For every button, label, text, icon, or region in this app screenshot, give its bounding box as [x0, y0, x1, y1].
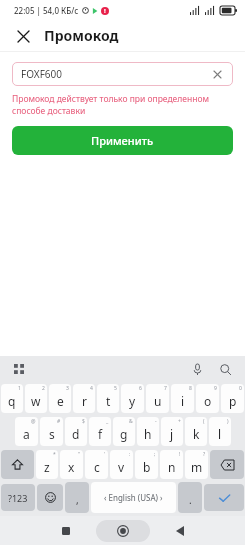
staticText: $: [82, 418, 85, 425]
staticText: b: [143, 459, 151, 475]
button[interactable]: ,: [65, 482, 89, 513]
button[interactable]: Recents: [46, 516, 86, 545]
button[interactable]: .: [178, 482, 202, 513]
staticText: h: [144, 426, 152, 442]
staticText: 1: [18, 385, 21, 392]
button[interactable]: Backspace: [210, 450, 244, 479]
button[interactable]: 9: [196, 384, 219, 413]
staticText: t: [106, 393, 111, 409]
button[interactable]: 0: [221, 384, 244, 413]
staticText: +: [178, 418, 181, 425]
staticText: y: [129, 393, 136, 409]
staticText: ?123: [8, 492, 28, 504]
staticText: #: [57, 418, 61, 425]
button[interactable]: :: [110, 450, 133, 479]
staticText: 2: [42, 385, 45, 392]
button[interactable]: Close: [12, 25, 34, 47]
button[interactable]: 4: [73, 384, 95, 413]
button[interactable]: $: [65, 417, 87, 446]
button[interactable]: Enter: [204, 484, 244, 511]
button[interactable]: Home: [96, 520, 150, 542]
staticText: ,: [76, 493, 79, 507]
staticText: d: [72, 426, 80, 442]
button[interactable]: +: [161, 417, 183, 446]
button[interactable]: !: [160, 450, 183, 479]
staticText: FOXF600: [21, 67, 63, 81]
button[interactable]: Symbols: [1, 484, 35, 511]
button[interactable]: *: [36, 450, 58, 479]
staticText: k: [193, 426, 200, 442]
staticText: &: [129, 418, 133, 425]
staticText: n: [168, 459, 176, 475]
button[interactable]: (: [185, 417, 207, 446]
staticText: 4: [90, 385, 93, 392]
button[interactable]: Clear: [210, 67, 224, 81]
staticText: x: [68, 459, 75, 475]
button[interactable]: ‹ English (USA) ›: [91, 482, 176, 513]
staticText: z: [44, 459, 50, 475]
button[interactable]: FOXF600: [12, 62, 233, 86]
button[interactable]: ): [209, 417, 231, 446]
staticText: u: [154, 393, 162, 409]
staticText: *: [53, 451, 56, 458]
staticText: m: [191, 459, 203, 475]
staticText: .: [189, 493, 192, 507]
button[interactable]: @: [15, 417, 38, 446]
staticText: Применить: [91, 133, 154, 148]
button[interactable]: 5: [97, 384, 119, 413]
button[interactable]: Применить: [12, 126, 233, 155]
button[interactable]: Voice input: [187, 359, 207, 379]
staticText: w: [31, 393, 41, 409]
staticText: @: [31, 418, 36, 425]
staticText: ): [227, 418, 229, 425]
staticText: q: [8, 393, 16, 409]
staticText: a: [23, 426, 30, 442]
staticText: ;: [154, 451, 156, 458]
button[interactable]: Search: [215, 359, 235, 379]
staticText: !: [104, 7, 106, 15]
staticText: Промокод действует только при определенн…: [12, 93, 233, 117]
staticText: f: [98, 426, 103, 442]
staticText: r: [82, 393, 87, 409]
staticText: 3: [66, 385, 69, 392]
button[interactable]: -: [137, 417, 159, 446]
button[interactable]: 1: [1, 384, 23, 413]
button[interactable]: Shift: [1, 450, 34, 479]
staticText: i: [181, 393, 185, 409]
button[interactable]: 3: [49, 384, 71, 413]
staticText: _: [106, 418, 109, 425]
button[interactable]: ?: [185, 450, 208, 479]
button[interactable]: 7: [146, 384, 169, 413]
button[interactable]: _: [89, 417, 111, 446]
button[interactable]: &: [113, 417, 135, 446]
staticText: :: [129, 451, 131, 458]
staticText: ": [78, 451, 81, 458]
staticText: c: [94, 459, 100, 475]
staticText: j: [170, 426, 174, 442]
staticText: -: [155, 418, 157, 425]
staticText: p: [229, 393, 237, 409]
button[interactable]: 2: [25, 384, 47, 413]
button[interactable]: #: [40, 417, 63, 446]
staticText: ?: [203, 451, 206, 458]
button[interactable]: ': [85, 450, 108, 479]
button[interactable]: Back: [160, 516, 200, 545]
staticText: v: [118, 459, 125, 475]
button[interactable]: 6: [121, 384, 144, 413]
staticText: !: [179, 451, 181, 458]
button[interactable]: Emoji: [37, 484, 63, 511]
staticText: 9: [214, 385, 217, 392]
staticText: 7: [164, 385, 167, 392]
staticText: 5: [114, 385, 117, 392]
staticText: 6: [139, 385, 142, 392]
staticText: e: [57, 393, 64, 409]
button[interactable]: ": [60, 450, 83, 479]
button[interactable]: 8: [171, 384, 194, 413]
button[interactable]: ;: [135, 450, 158, 479]
staticText: (: [203, 418, 205, 425]
staticText: ': [104, 451, 106, 458]
staticText: Промокод: [44, 26, 119, 45]
staticText: 8: [189, 385, 192, 392]
staticText: 22:05 | 54,0 КБ/c: [14, 5, 79, 16]
button[interactable]: Keyboard menu: [10, 360, 28, 378]
